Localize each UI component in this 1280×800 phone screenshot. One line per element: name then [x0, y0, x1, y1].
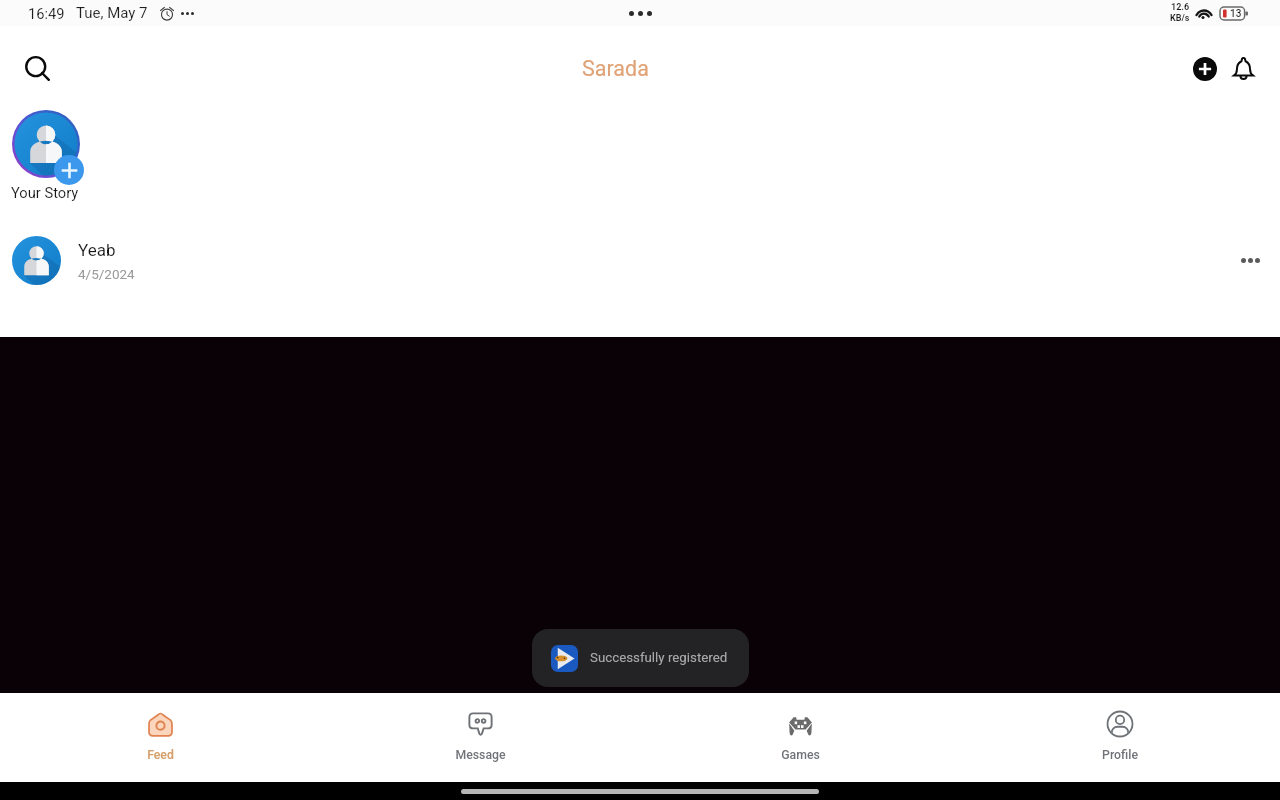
- button[interactable]: Message: [320, 712, 640, 763]
- button[interactable]: More options: [1228, 238, 1272, 282]
- button[interactable]: Notifications: [1221, 46, 1266, 91]
- staticText: Feed: [147, 748, 174, 762]
- staticText: 16:49: [28, 5, 65, 22]
- staticText: Message: [455, 748, 506, 762]
- staticText: 4/5/2024: [78, 266, 135, 282]
- staticText: Yeab: [78, 240, 116, 260]
- staticText: Games: [781, 748, 820, 762]
- button[interactable]: Yeab: [0, 224, 1280, 296]
- button[interactable]: Games: [640, 712, 960, 763]
- staticText: Sarada: [582, 56, 649, 81]
- button[interactable]: Search: [15, 46, 60, 91]
- staticText: Your Story: [11, 184, 79, 201]
- staticText: Successfully registered: [590, 650, 728, 666]
- staticText: 12.6: [1171, 2, 1190, 13]
- button[interactable]: Your Story: [6, 110, 86, 202]
- staticText: Profile: [1102, 748, 1138, 762]
- button[interactable]: Feed: [0, 712, 320, 763]
- button[interactable]: Profile: [960, 712, 1280, 763]
- staticText: 13: [1230, 8, 1242, 20]
- staticText: KB/s: [1170, 13, 1190, 24]
- button[interactable]: Add: [1182, 46, 1227, 91]
- staticText: Tue, May 7: [76, 4, 148, 22]
